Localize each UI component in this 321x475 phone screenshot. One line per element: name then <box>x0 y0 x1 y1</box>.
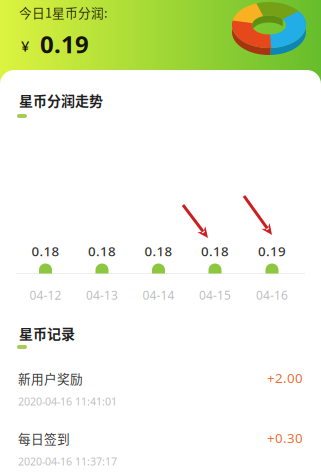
staticText: 04-13 <box>86 287 118 303</box>
staticText: ¥ <box>21 36 29 55</box>
staticText: 2020-04-16 11:41:01 <box>18 394 117 408</box>
staticText: 0.18 <box>144 242 172 260</box>
staticText: 04-12 <box>29 287 61 303</box>
staticText: 0.18 <box>201 242 229 260</box>
staticText: +0.30 <box>267 429 303 447</box>
staticText: 今日1星币分润: <box>19 3 108 21</box>
staticText: 星币分润走势 <box>19 90 103 110</box>
staticText: 04-16 <box>256 287 288 303</box>
staticText: 0.18 <box>88 242 116 260</box>
staticText: 新用户奖励 <box>18 369 83 387</box>
staticText: 每日签到 <box>18 429 70 447</box>
staticText: 2020-04-16 11:37:17 <box>18 454 117 468</box>
staticText: 04-15 <box>199 287 231 303</box>
staticText: 星币记录 <box>19 323 75 343</box>
staticText: 04-14 <box>142 287 174 303</box>
staticText: +2.00 <box>267 369 303 387</box>
staticText: 0.18 <box>31 242 59 260</box>
button[interactable]: 每日签到 <box>0 429 321 468</box>
staticText: 0.19 <box>258 242 286 260</box>
button[interactable]: 新用户奖励 <box>0 369 321 408</box>
staticText: 0.19 <box>40 28 89 60</box>
